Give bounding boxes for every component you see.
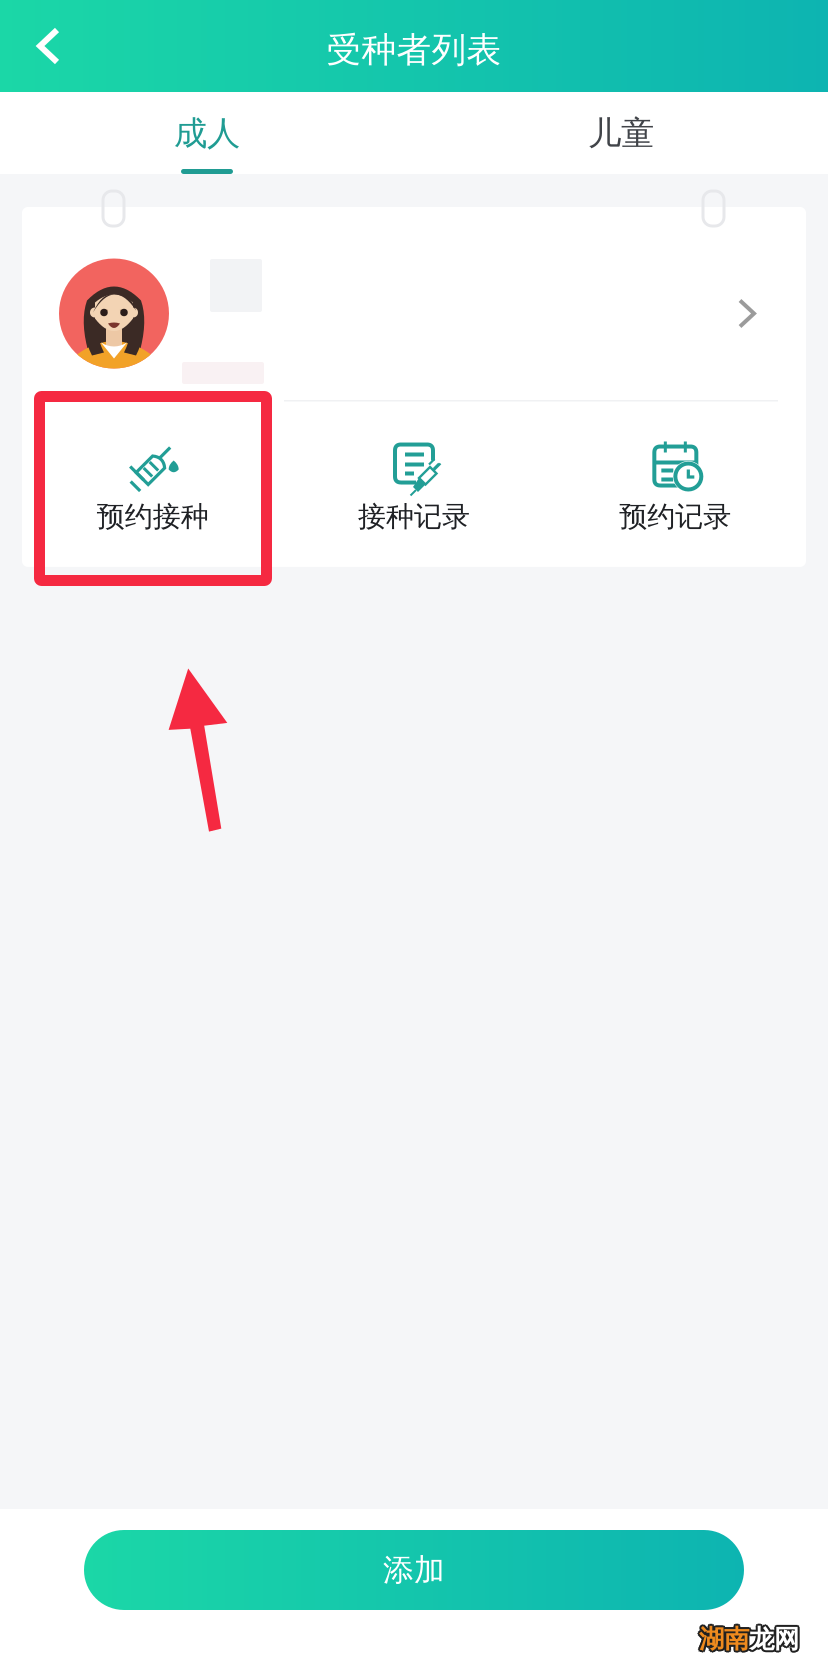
staticText: 湖南 — [699, 1623, 749, 1654]
staticText: 预约记录 — [619, 499, 731, 534]
button[interactable]: 添加 — [84, 1530, 744, 1610]
button[interactable]: 成人 — [0, 91, 414, 175]
staticText: 湖南龙网 — [697, 1625, 797, 1656]
staticText: 湖南龙网 — [700, 1622, 800, 1653]
staticText: 湖南龙网 — [701, 1623, 801, 1654]
staticText: 湖南龙网 — [697, 1623, 797, 1654]
button[interactable]: 预约接种 — [22, 401, 283, 567]
staticText: 受种者列表 — [326, 29, 501, 71]
staticText: 湖南龙网 — [697, 1622, 797, 1653]
staticText: 添加 — [383, 1551, 445, 1589]
button[interactable]: Back — [0, 0, 81, 92]
staticText: 接种记录 — [358, 499, 470, 534]
button[interactable] — [22, 207, 806, 400]
staticText: 湖南龙网 — [699, 1621, 799, 1652]
staticText: 龙网 — [749, 1623, 799, 1654]
staticText: 湖南龙网 — [700, 1625, 800, 1656]
staticText: 儿童 — [588, 113, 654, 154]
button[interactable]: 预约记录 — [545, 401, 806, 567]
staticText: 成人 — [174, 113, 240, 154]
staticText: 湖南龙网 — [699, 1625, 799, 1656]
staticText: 预约接种 — [97, 499, 209, 534]
button[interactable]: 儿童 — [414, 91, 828, 175]
button[interactable]: 接种记录 — [283, 401, 545, 567]
